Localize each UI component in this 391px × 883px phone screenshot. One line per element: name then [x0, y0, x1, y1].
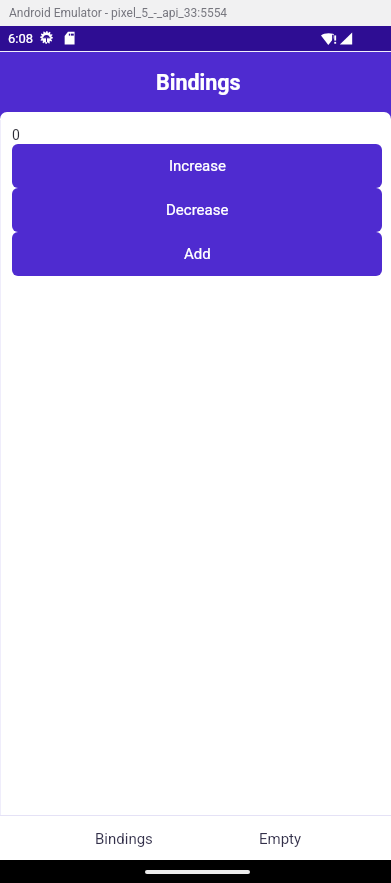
- button[interactable]: Add: [12, 232, 382, 276]
- staticText: Add: [184, 245, 211, 263]
- button[interactable]: Decrease: [12, 188, 382, 232]
- staticText: Empty: [259, 830, 302, 848]
- button[interactable]: Empty: [202, 816, 358, 860]
- button[interactable]: Increase: [12, 144, 382, 188]
- staticText: 0: [12, 127, 20, 143]
- staticText: Increase: [169, 157, 226, 175]
- other: Developer options: [40, 31, 53, 44]
- button[interactable]: Bindings: [46, 816, 202, 860]
- staticText: Android Emulator - pixel_5_-_api_33:5554: [9, 6, 228, 20]
- other: Saved file: [64, 31, 75, 45]
- staticText: Bindings: [156, 70, 241, 95]
- other: Cellular signal: [339, 32, 353, 45]
- other: Wi-Fi no internet: [321, 32, 338, 45]
- staticText: Bindings: [95, 830, 153, 848]
- staticText: Decrease: [166, 201, 229, 219]
- staticText: 6:08: [8, 31, 34, 46]
